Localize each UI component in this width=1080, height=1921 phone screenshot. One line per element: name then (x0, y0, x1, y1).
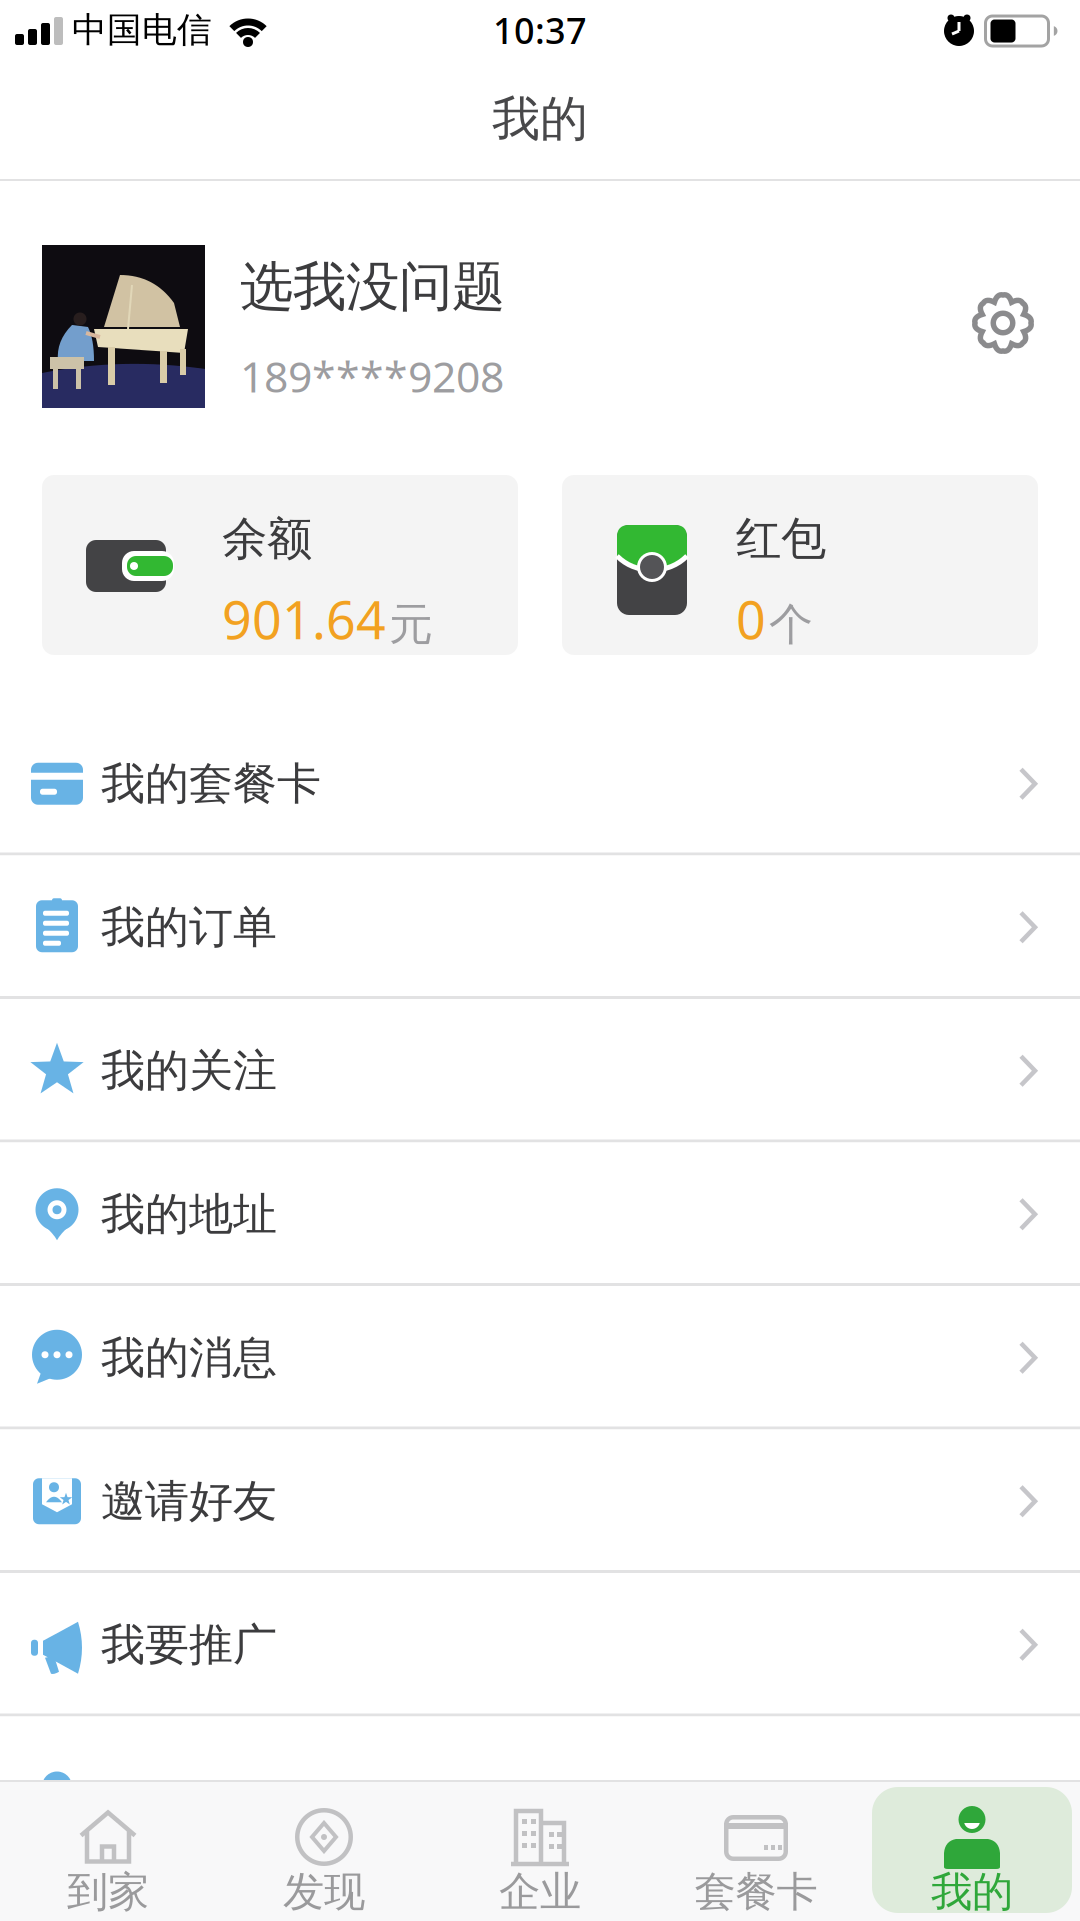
button[interactable]: 邀请好友 (0, 1429, 1080, 1573)
staticText: 我的 (931, 1867, 1013, 1917)
staticText: 0 (736, 584, 766, 654)
button[interactable]: 红包 (562, 475, 1038, 655)
button[interactable]: 余额 (42, 475, 518, 655)
staticText: 套餐卡 (694, 1867, 817, 1917)
staticText: 901.64 (222, 584, 386, 654)
button[interactable]: 我的套餐卡 (0, 712, 1080, 855)
staticText: 元 (389, 597, 433, 651)
button[interactable]: 我的订单 (0, 855, 1080, 999)
staticText: 企业 (499, 1867, 581, 1917)
staticText: 我要推广 (101, 1618, 277, 1672)
button[interactable]: 设置 (963, 283, 1043, 363)
button[interactable]: 企业 (432, 1780, 648, 1921)
button[interactable]: 我的地址 (0, 1142, 1080, 1286)
staticText: 我的地址 (101, 1187, 277, 1241)
staticText: 189****9208 (240, 348, 504, 404)
staticText: 红包 (736, 511, 826, 567)
staticText: 中国电信 (72, 9, 212, 51)
button[interactable]: 我的消息 (0, 1286, 1080, 1429)
staticText: 我的套餐卡 (101, 757, 321, 811)
staticText: 到家 (67, 1867, 149, 1917)
staticText: 余额 (222, 511, 312, 567)
button[interactable]: 到家 (0, 1780, 216, 1921)
staticText: 选我没问题 (240, 254, 505, 320)
staticText: 我的关注 (101, 1044, 277, 1098)
staticText: 邀请好友 (101, 1474, 277, 1528)
staticText: 我的 (492, 89, 588, 148)
staticText: 我的订单 (101, 900, 277, 954)
button[interactable]: 我要推广 (0, 1573, 1080, 1716)
button[interactable]: 我的 (864, 1780, 1080, 1921)
staticText: 10:37 (493, 6, 587, 54)
button[interactable]: 套餐卡 (648, 1780, 864, 1921)
button[interactable]: 发现 (216, 1780, 432, 1921)
staticText: 我的消息 (101, 1331, 277, 1385)
button[interactable]: 更多 (0, 1716, 1080, 1860)
staticText: 个 (769, 597, 813, 651)
button[interactable]: 我的关注 (0, 999, 1080, 1142)
staticText: 发现 (283, 1867, 365, 1917)
